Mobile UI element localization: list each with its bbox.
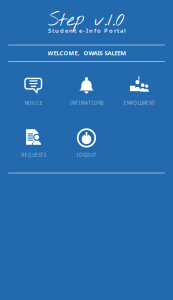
- staticText: ENROLLMENT: [123, 100, 155, 106]
- staticText: LOGOUT: [76, 152, 97, 158]
- button[interactable]: NOTICE: [7, 71, 60, 111]
- staticText: INTIMATIONS: [70, 100, 103, 106]
- button[interactable]: ENROLLMENT: [113, 71, 166, 111]
- staticText: WELCOME, OWAIS SALEEM: [47, 49, 126, 57]
- button[interactable]: LOGOUT: [60, 123, 113, 163]
- staticText: Step v.1.0: [47, 8, 124, 33]
- button[interactable]: REQUESTS: [7, 123, 60, 163]
- staticText: NOTICE: [24, 100, 43, 106]
- staticText: Student e-Info Portal: [48, 27, 126, 34]
- button[interactable]: INTIMATIONS: [60, 71, 113, 111]
- staticText: REQUESTS: [21, 152, 46, 158]
